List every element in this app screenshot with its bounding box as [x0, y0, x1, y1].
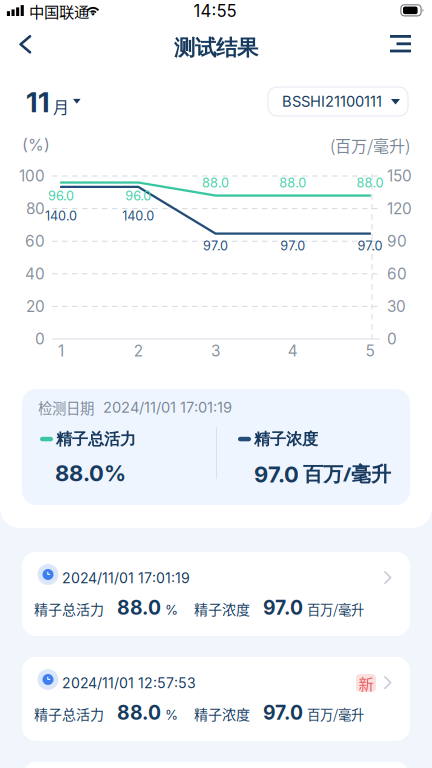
staticText: 1	[58, 342, 64, 360]
staticText: 5	[365, 342, 374, 360]
staticText: 97.0	[263, 701, 303, 724]
staticText: 30	[387, 297, 406, 316]
staticText: 60	[25, 232, 45, 250]
staticText: 140.0	[122, 208, 154, 224]
staticText: 精子浓度	[194, 598, 250, 619]
staticText: 120	[387, 199, 412, 218]
button[interactable]: 返回	[7, 22, 44, 67]
staticText: 百万/毫升	[307, 704, 364, 724]
staticText: 2024/11/01 12:57:53	[62, 674, 196, 691]
staticText: 百万/毫升	[307, 599, 364, 619]
staticText: 140.0	[45, 208, 77, 224]
staticText: 88.0%	[55, 460, 126, 487]
button[interactable]: 2024/11/01 12:57:53	[22, 657, 410, 741]
staticText: 精子总活力	[34, 703, 104, 724]
staticText: 测试结果	[174, 35, 258, 61]
staticText: BSSHI21100111	[282, 93, 382, 110]
staticText: 97.0	[263, 596, 303, 619]
staticText: 90	[387, 232, 407, 250]
staticText: %	[165, 602, 178, 618]
staticText: 精子总活力	[56, 429, 136, 449]
staticText: 月	[53, 95, 69, 118]
staticText: 40	[25, 264, 45, 283]
staticText: 精子浓度	[194, 703, 250, 724]
staticText: 96.0	[125, 188, 151, 204]
staticText: 11	[26, 85, 50, 119]
staticText: 80	[26, 199, 45, 218]
staticText: 88.0	[279, 175, 306, 191]
staticText: 97.0	[203, 238, 228, 254]
staticText: 中国联通	[29, 0, 89, 22]
button[interactable]: 2024/11/01 17:01:19	[22, 552, 410, 636]
staticText: 88.0	[202, 175, 229, 191]
staticText: 2024/11/01 17:01:19	[103, 399, 232, 416]
staticText: 2	[134, 342, 143, 360]
staticText: 4	[288, 342, 298, 360]
staticText: %	[165, 707, 178, 723]
staticText: 96.0	[48, 188, 74, 204]
staticText: 14:55	[193, 1, 236, 21]
staticText: 150	[387, 167, 412, 185]
staticText: (%)	[22, 135, 50, 155]
staticText: 精子浓度	[254, 429, 318, 449]
staticText: 2024/11/01 17:01:19	[62, 569, 190, 586]
button[interactable]: BSSHI21100111	[268, 87, 408, 116]
staticText: 0	[35, 330, 45, 348]
staticText: 97.0	[254, 461, 299, 488]
staticText: 检测日期	[38, 397, 94, 418]
staticText: 3	[211, 342, 220, 360]
staticText: 20	[26, 297, 45, 316]
staticText: 百万/毫升	[303, 460, 391, 487]
staticText: 0	[387, 330, 397, 348]
staticText: 新	[358, 672, 373, 694]
staticText: 精子总活力	[34, 598, 104, 619]
staticText: 97.0	[280, 238, 305, 254]
staticText: 97.0	[357, 238, 382, 254]
button[interactable]: 菜单	[377, 22, 424, 65]
staticText: 88.0	[117, 701, 161, 724]
button[interactable]: 11	[0, 80, 93, 124]
staticText: (百万/毫升)	[330, 133, 410, 157]
staticText: 88.0	[356, 175, 383, 191]
staticText: 100	[19, 167, 45, 185]
staticText: 88.0	[117, 596, 161, 619]
staticText: 60	[387, 264, 407, 283]
